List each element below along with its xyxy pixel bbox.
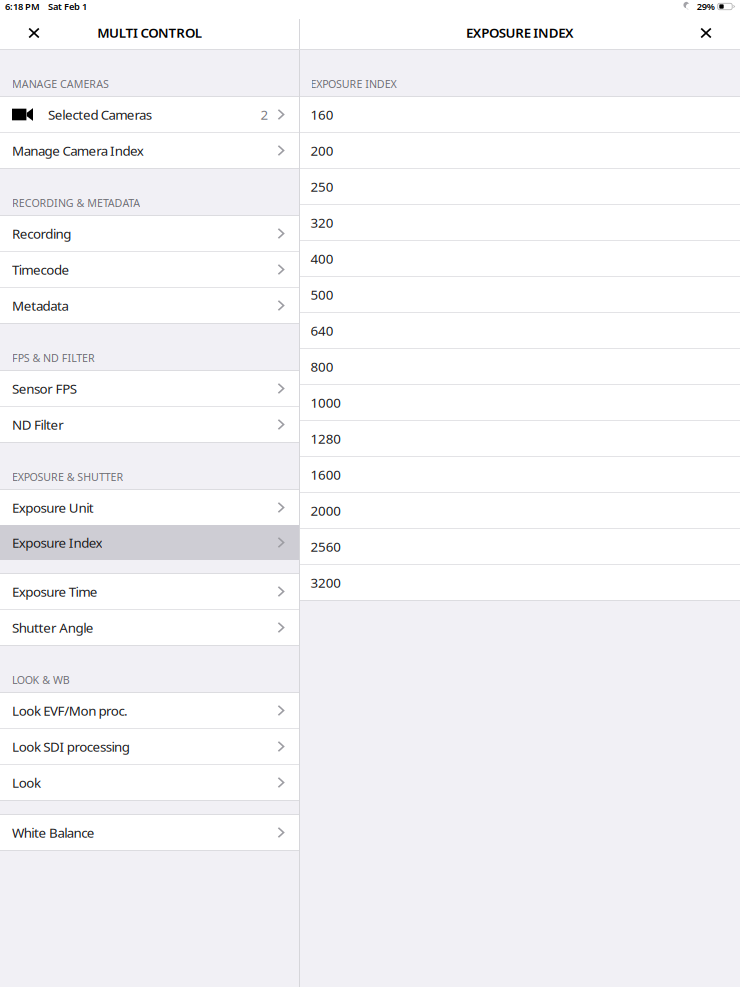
button[interactable]: ND Filter xyxy=(0,407,299,442)
staticText: Manage Camera Index xyxy=(12,142,144,159)
staticText: 1000 xyxy=(310,394,341,411)
button[interactable]: 160 xyxy=(300,97,740,132)
button[interactable]: Recording xyxy=(0,216,299,251)
staticText: 160 xyxy=(310,106,334,123)
staticText: 2000 xyxy=(310,502,341,519)
staticText: 3200 xyxy=(310,574,341,591)
staticText: Look SDI processing xyxy=(12,738,130,755)
staticText: 1600 xyxy=(310,466,341,483)
staticText: 250 xyxy=(310,178,334,195)
staticText: Exposure Time xyxy=(12,583,98,600)
staticText: 2560 xyxy=(310,538,341,555)
staticText: Look xyxy=(12,774,41,791)
staticText: Timecode xyxy=(12,261,70,278)
staticText: EXPOSURE & SHUTTER xyxy=(12,470,123,484)
staticText: MANAGE CAMERAS xyxy=(12,77,109,91)
button[interactable]: Look SDI processing xyxy=(0,729,299,764)
button[interactable]: Exposure Unit xyxy=(0,490,299,525)
staticText: Selected Cameras xyxy=(48,106,152,123)
staticText: FPS & ND FILTER xyxy=(12,351,95,365)
staticText: Shutter Angle xyxy=(12,619,94,636)
button[interactable]: 640 xyxy=(300,313,740,348)
staticText: White Balance xyxy=(12,824,95,841)
button[interactable]: Look EVF/Mon proc. xyxy=(0,693,299,728)
staticText: 200 xyxy=(310,142,334,159)
staticText: LOOK & WB xyxy=(12,673,70,687)
button[interactable]: Shutter Angle xyxy=(0,610,299,645)
button[interactable]: Close Multi Control xyxy=(14,19,54,49)
staticText: 500 xyxy=(310,286,334,303)
staticText: ND Filter xyxy=(12,416,64,433)
staticText: Exposure Unit xyxy=(12,499,94,516)
button[interactable]: 500 xyxy=(300,277,740,312)
button[interactable]: 1280 xyxy=(300,421,740,456)
staticText: Exposure Index xyxy=(12,534,102,551)
button[interactable]: Sensor FPS xyxy=(0,371,299,406)
button[interactable]: 2560 xyxy=(300,529,740,564)
staticText: EXPOSURE INDEX xyxy=(466,24,574,41)
staticText: 640 xyxy=(310,322,334,339)
staticText: Recording xyxy=(12,225,71,242)
button[interactable]: 250 xyxy=(300,169,740,204)
staticText: RECORDING & METADATA xyxy=(12,196,140,210)
button[interactable]: Selected Cameras xyxy=(0,97,299,132)
button[interactable]: Look xyxy=(0,765,299,800)
staticText: 400 xyxy=(310,250,334,267)
staticText: 2 xyxy=(260,106,268,123)
staticText: Metadata xyxy=(12,297,69,314)
button[interactable]: 1600 xyxy=(300,457,740,492)
staticText: Look EVF/Mon proc. xyxy=(12,702,128,719)
button[interactable]: 800 xyxy=(300,349,740,384)
button[interactable]: Close Exposure Index xyxy=(686,19,726,49)
button[interactable]: 3200 xyxy=(300,565,740,600)
staticText: MULTI CONTROL xyxy=(97,24,202,41)
button[interactable]: 2000 xyxy=(300,493,740,528)
staticText: 1280 xyxy=(310,430,341,447)
button[interactable]: Exposure Index xyxy=(0,525,299,560)
staticText: Sensor FPS xyxy=(12,380,77,397)
staticText: 800 xyxy=(310,358,334,375)
staticText: 6:18 PM xyxy=(5,0,40,13)
button[interactable]: 320 xyxy=(300,205,740,240)
button[interactable]: Exposure Time xyxy=(0,574,299,609)
button[interactable]: 1000 xyxy=(300,385,740,420)
staticText: 320 xyxy=(310,214,334,231)
button[interactable]: 400 xyxy=(300,241,740,276)
button[interactable]: 200 xyxy=(300,133,740,168)
staticText: 29% xyxy=(697,0,715,13)
button[interactable]: Timecode xyxy=(0,252,299,287)
button[interactable]: Manage Camera Index xyxy=(0,133,299,168)
staticText: EXPOSURE INDEX xyxy=(310,77,396,91)
staticText: Sat Feb 1 xyxy=(48,0,87,13)
button[interactable]: White Balance xyxy=(0,815,299,850)
button[interactable]: Metadata xyxy=(0,288,299,323)
